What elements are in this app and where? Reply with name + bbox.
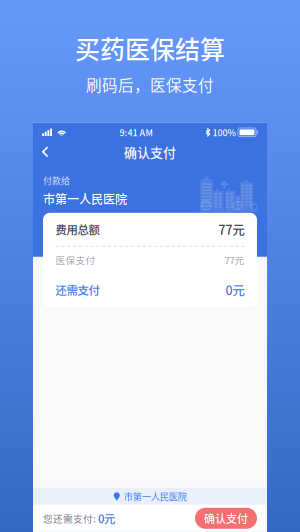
staticText: 77元 — [224, 253, 244, 267]
staticText: 买药医保结算 — [75, 30, 225, 66]
staticText: 刷码后，医保支付 — [86, 73, 214, 96]
button[interactable]: 确认支付 — [195, 508, 257, 529]
staticText: 100% — [212, 126, 235, 139]
staticText: 0元 — [98, 510, 115, 526]
staticText: 确认支付 — [124, 142, 176, 161]
staticText: 确认支付 — [204, 510, 248, 526]
staticText: 市第一人民医院 — [124, 490, 187, 503]
staticText: 费用总额 — [55, 221, 99, 237]
staticText: 9:41 AM — [119, 126, 152, 139]
staticText: 还需支付 — [55, 281, 99, 298]
staticText: 付款给 — [43, 174, 70, 187]
staticText: 市第一人民医院 — [43, 190, 127, 207]
button[interactable]: Back — [33, 140, 56, 163]
staticText: 您还需支付: — [43, 511, 96, 525]
staticText: 77元 — [218, 220, 244, 238]
staticText: 0元 — [225, 281, 244, 299]
staticText: 医保支付 — [55, 253, 95, 267]
